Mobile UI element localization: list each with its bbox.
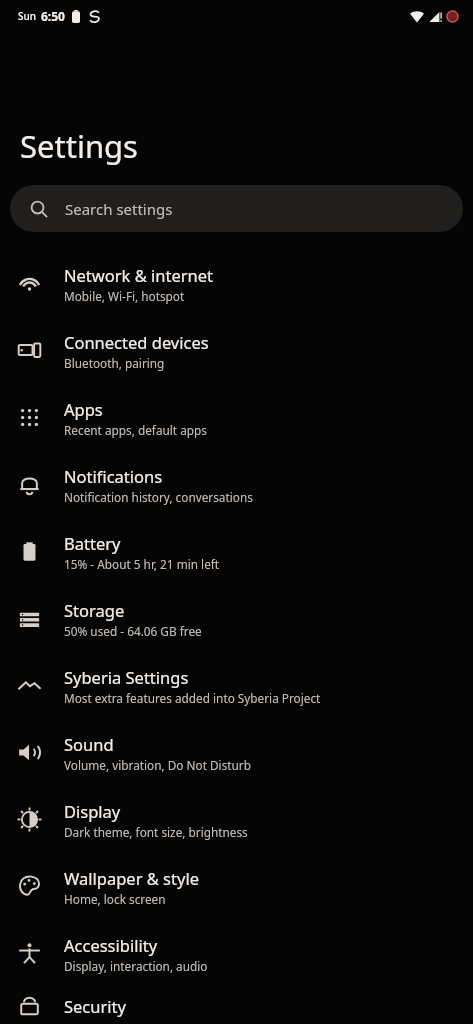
staticText: 6:50 bbox=[41, 8, 65, 24]
staticText: Notification history, conversations bbox=[64, 489, 253, 505]
staticText: Sun bbox=[18, 9, 37, 23]
staticText: Display bbox=[64, 800, 121, 822]
button[interactable]: Security bbox=[0, 987, 473, 1024]
staticText: Battery bbox=[64, 532, 121, 554]
staticText: Sound bbox=[64, 733, 114, 755]
staticText: Recent apps, default apps bbox=[64, 422, 207, 438]
button[interactable]: Wallpaper & style bbox=[0, 853, 473, 920]
staticText: 50% used - 64.06 GB free bbox=[64, 623, 202, 639]
staticText: Apps bbox=[64, 398, 103, 420]
button[interactable]: Apps bbox=[0, 384, 473, 451]
staticText: Mobile, Wi-Fi, hotspot bbox=[64, 288, 185, 304]
button[interactable]: Search settings bbox=[10, 185, 463, 232]
staticText: 15% - About 5 hr, 21 min left bbox=[64, 556, 220, 572]
staticText: Search settings bbox=[65, 199, 173, 219]
button[interactable]: Sound bbox=[0, 719, 473, 786]
staticText: Storage bbox=[64, 599, 125, 621]
button[interactable]: Network & internet bbox=[0, 250, 473, 317]
button[interactable]: Syberia Settings bbox=[0, 652, 473, 719]
staticText: Volume, vibration, Do Not Disturb bbox=[64, 757, 251, 773]
staticText: Dark theme, font size, brightness bbox=[64, 824, 248, 840]
staticText: Network & internet bbox=[64, 264, 214, 286]
button[interactable]: Display bbox=[0, 786, 473, 853]
staticText: Home, lock screen bbox=[64, 891, 166, 907]
button[interactable]: Accessibility bbox=[0, 920, 473, 987]
button[interactable]: Storage bbox=[0, 585, 473, 652]
staticText: Syberia Settings bbox=[64, 666, 189, 688]
staticText: Connected devices bbox=[64, 331, 209, 353]
button[interactable]: Notifications bbox=[0, 451, 473, 518]
staticText: Notifications bbox=[64, 465, 163, 487]
staticText: Settings bbox=[20, 125, 138, 167]
button[interactable]: Battery bbox=[0, 518, 473, 585]
staticText: Display, interaction, audio bbox=[64, 958, 208, 974]
staticText: Security bbox=[64, 995, 126, 1017]
button[interactable]: Connected devices bbox=[0, 317, 473, 384]
staticText: Bluetooth, pairing bbox=[64, 355, 165, 371]
staticText: Most extra features added into Syberia P… bbox=[64, 690, 321, 706]
staticText: Wallpaper & style bbox=[64, 867, 199, 889]
staticText: Accessibility bbox=[64, 934, 158, 956]
